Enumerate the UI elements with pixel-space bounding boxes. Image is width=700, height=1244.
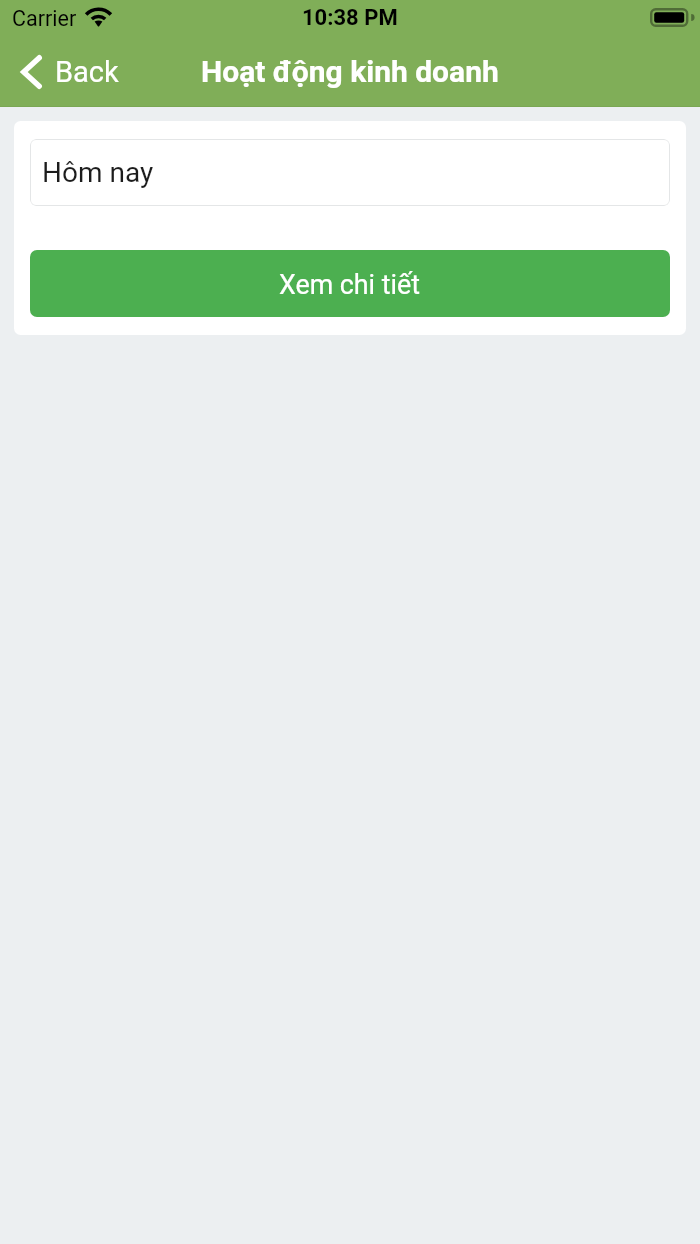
staticText: 10:38 PM bbox=[302, 5, 398, 31]
other: Battery bbox=[650, 8, 694, 27]
button[interactable]: Back bbox=[0, 36, 133, 107]
staticText: Xem chi tiết bbox=[279, 269, 421, 300]
button[interactable]: Hôm nay bbox=[30, 139, 670, 206]
staticText: Back bbox=[55, 55, 119, 89]
button[interactable]: Xem chi tiết bbox=[30, 250, 670, 317]
staticText: Hoạt động kinh doanh bbox=[201, 54, 499, 89]
staticText: Hôm nay bbox=[42, 156, 154, 189]
staticText: Carrier bbox=[12, 6, 77, 31]
